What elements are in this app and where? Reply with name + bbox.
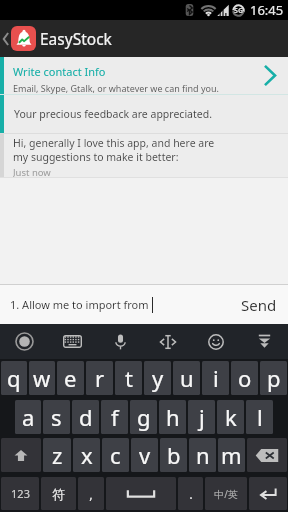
staticText: Write contact Info xyxy=(13,64,106,79)
button[interactable]: p xyxy=(260,361,287,395)
button[interactable]: z xyxy=(43,438,71,472)
staticText: Your precious feedback are appreciated. xyxy=(14,107,212,121)
button[interactable]: x xyxy=(73,438,100,472)
button[interactable]: u xyxy=(173,361,200,395)
button[interactable]: Send xyxy=(230,285,288,324)
staticText: l xyxy=(257,402,263,432)
staticText: t xyxy=(125,363,133,393)
button[interactable]: 123 xyxy=(1,477,39,510)
button[interactable]: f xyxy=(101,400,128,434)
staticText: i xyxy=(213,363,219,393)
staticText: s xyxy=(51,402,62,432)
staticText: , xyxy=(89,485,93,503)
button[interactable]: 1. Allow me to import from xyxy=(10,285,230,324)
staticText: 5G xyxy=(234,6,244,16)
button[interactable]: y xyxy=(144,361,171,395)
staticText: Email, Skype, Gtalk, or whatever we can … xyxy=(13,82,219,94)
staticText: r xyxy=(95,363,105,393)
button[interactable]: l xyxy=(246,400,273,434)
button[interactable]: w xyxy=(29,361,55,395)
staticText: 1. Allow me to import from xyxy=(10,297,149,312)
button[interactable]: Emoji xyxy=(192,324,240,359)
staticText: 16:45 xyxy=(250,1,284,19)
button[interactable]: c xyxy=(102,438,129,472)
button[interactable]: 符 xyxy=(41,477,76,510)
staticText: my suggestions to make it better: xyxy=(13,150,179,164)
staticText: x xyxy=(81,440,93,470)
button[interactable]: Keyboard layout xyxy=(48,324,96,359)
staticText: z xyxy=(52,440,63,470)
staticText: Hi, generally I love this app, and here … xyxy=(13,136,215,150)
staticText: j xyxy=(199,402,205,432)
staticText: e xyxy=(64,363,77,393)
button[interactable]: Space xyxy=(106,477,176,510)
button[interactable]: Hide keyboard xyxy=(240,324,288,359)
button[interactable]: j xyxy=(188,400,215,434)
staticText: c xyxy=(110,440,121,470)
button[interactable]: t xyxy=(115,361,142,395)
button[interactable]: s xyxy=(43,400,70,434)
staticText: h xyxy=(166,402,180,432)
button[interactable]: Backspace xyxy=(247,438,287,472)
button[interactable]: Voice input microphone xyxy=(96,324,144,359)
button[interactable]: h xyxy=(159,400,186,434)
staticText: d xyxy=(79,402,93,432)
button[interactable]: i xyxy=(202,361,229,395)
button[interactable]: Navigate up xyxy=(0,20,11,57)
staticText: EasyStock xyxy=(40,28,112,49)
button[interactable]: v xyxy=(131,438,158,472)
button[interactable]: Enter xyxy=(249,477,287,510)
staticText: g xyxy=(137,402,151,432)
button[interactable]: n xyxy=(189,438,216,472)
button[interactable]: b xyxy=(160,438,187,472)
button[interactable]: 中/英 xyxy=(205,477,247,510)
staticText: . xyxy=(189,485,193,503)
staticText: y xyxy=(152,363,164,393)
staticText: b xyxy=(167,440,181,470)
staticText: 123 xyxy=(11,486,30,501)
button[interactable]: o xyxy=(231,361,258,395)
staticText: Send xyxy=(241,295,277,315)
staticText: k xyxy=(225,402,237,432)
button[interactable]: k xyxy=(217,400,244,434)
staticText: n xyxy=(196,440,210,470)
staticText: 中/英 xyxy=(214,487,238,501)
staticText: o xyxy=(238,363,252,393)
button[interactable]: e xyxy=(57,361,84,395)
staticText: f xyxy=(111,402,119,432)
button[interactable]: , xyxy=(78,477,104,510)
staticText: Just now xyxy=(13,166,51,177)
button[interactable]: d xyxy=(72,400,99,434)
staticText: p xyxy=(267,363,281,393)
button[interactable]: a xyxy=(15,400,41,434)
button[interactable]: Voice input xyxy=(0,324,48,359)
button[interactable]: r xyxy=(86,361,113,395)
button[interactable]: . xyxy=(178,477,203,510)
button[interactable]: m xyxy=(218,438,245,472)
staticText: a xyxy=(22,402,35,432)
button[interactable]: Shift xyxy=(1,438,41,472)
staticText: v xyxy=(139,440,151,470)
button[interactable]: g xyxy=(130,400,157,434)
staticText: u xyxy=(180,363,194,393)
staticText: 符 xyxy=(52,486,65,502)
staticText: m xyxy=(221,440,242,470)
staticText: w xyxy=(33,363,51,393)
button[interactable]: Write contact Info xyxy=(0,57,288,94)
button[interactable]: Move cursor xyxy=(144,324,192,359)
button[interactable]: q xyxy=(1,361,27,395)
staticText: q xyxy=(7,363,21,393)
